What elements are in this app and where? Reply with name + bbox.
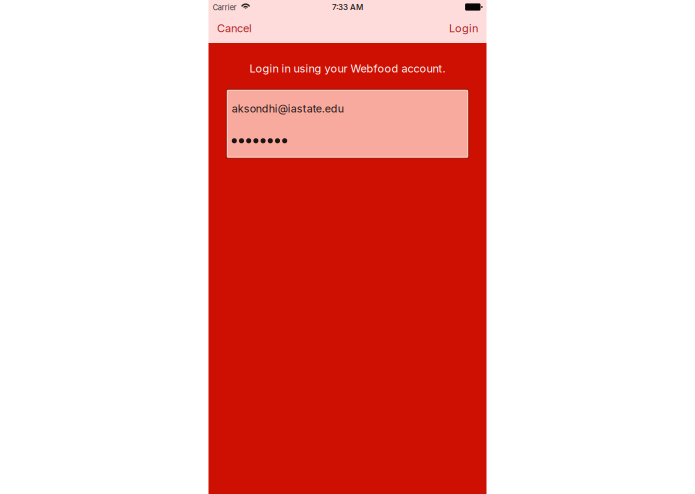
staticText: Carrier xyxy=(213,3,237,12)
button[interactable]: Cancel xyxy=(208,16,264,43)
button[interactable]: Email address xyxy=(226,89,469,118)
staticText: aksondhi@iastate.edu xyxy=(232,102,344,115)
staticText: Login in using your Webfood account. xyxy=(249,62,445,75)
staticText: Cancel xyxy=(217,22,252,35)
button[interactable]: Login xyxy=(437,16,486,43)
staticText: Login xyxy=(449,22,478,35)
button[interactable]: Password xyxy=(226,118,469,146)
staticText: 7:33 AM xyxy=(332,2,363,12)
